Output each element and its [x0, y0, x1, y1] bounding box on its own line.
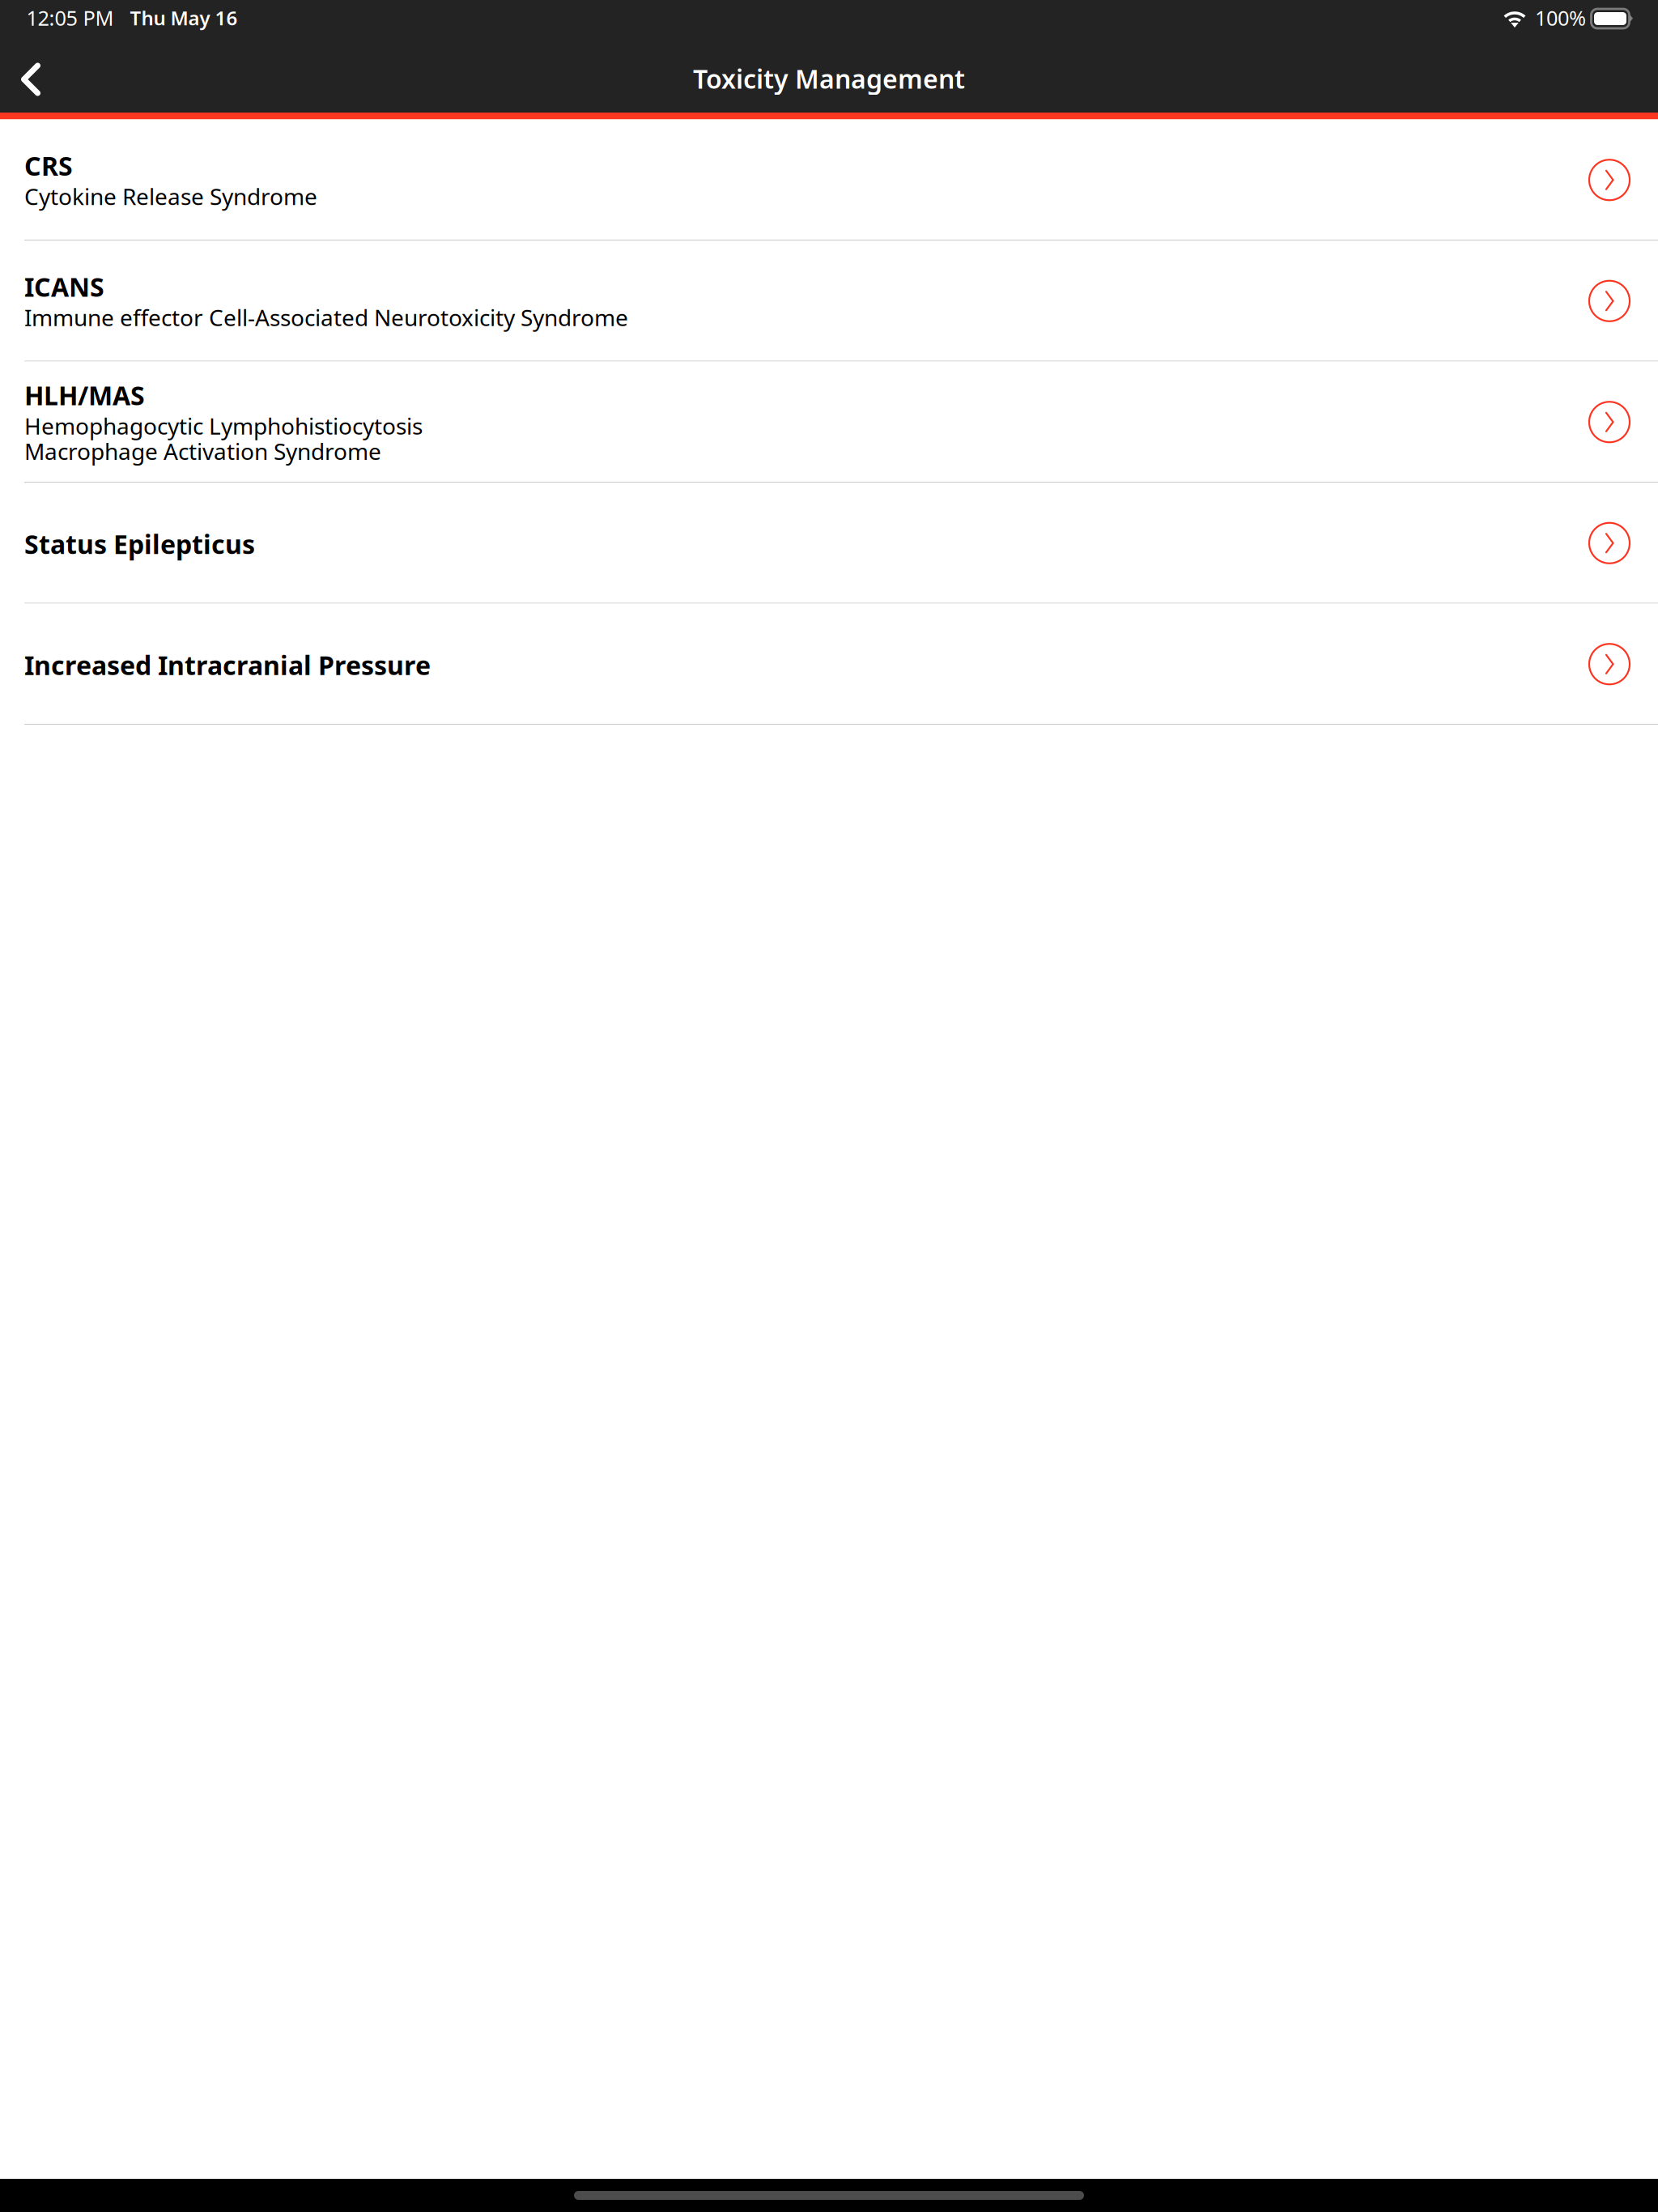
- staticText: Thu May 16: [130, 5, 238, 31]
- staticText: HLH/MAS: [24, 378, 145, 412]
- button[interactable]: ICANS: [0, 240, 1658, 362]
- button[interactable]: Increased Intracranial Pressure: [0, 604, 1658, 725]
- staticText: Macrophage Activation Syndrome: [24, 436, 381, 466]
- staticText: 12:05 PM: [26, 4, 114, 31]
- staticText: Status Epilepticus: [24, 527, 255, 561]
- staticText: Increased Intracranial Pressure: [24, 648, 431, 682]
- button[interactable]: CRS: [0, 119, 1658, 240]
- button[interactable]: Back: [0, 46, 67, 113]
- staticText: 100%: [1535, 4, 1586, 31]
- button[interactable]: Status Epilepticus: [0, 483, 1658, 604]
- staticText: ICANS: [24, 270, 104, 304]
- staticText: Toxicity Management: [693, 61, 965, 96]
- staticText: Cytokine Release Syndrome: [24, 181, 317, 211]
- button[interactable]: HLH/MAS: [0, 362, 1658, 483]
- staticText: CRS: [24, 148, 73, 183]
- staticText: Immune effector Cell-Associated Neurotox…: [24, 302, 628, 332]
- staticText: Hemophagocytic Lymphohistiocytosis: [24, 411, 423, 441]
